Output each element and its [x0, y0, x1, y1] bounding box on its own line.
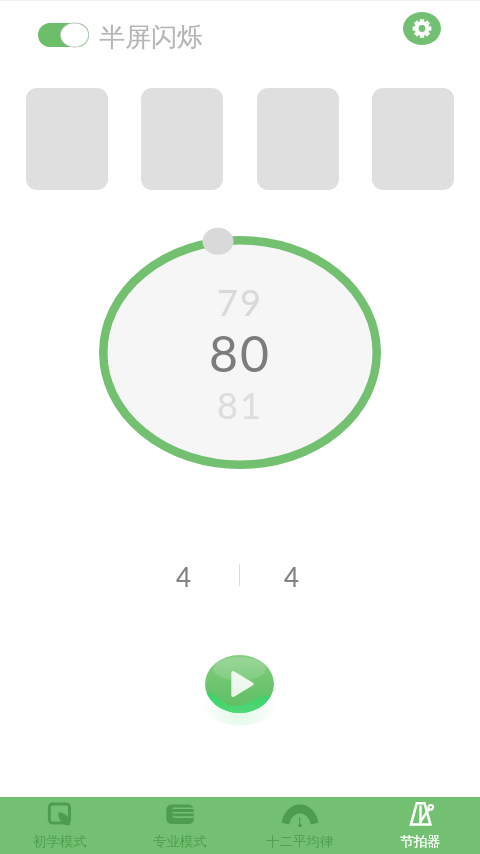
button[interactable] — [372, 88, 454, 190]
button[interactable] — [26, 88, 108, 190]
button[interactable]: 十二平均律 — [240, 797, 360, 854]
button[interactable] — [257, 88, 339, 190]
button[interactable]: 初学模式 — [0, 797, 120, 854]
button[interactable]: Settings — [403, 12, 441, 45]
staticText: 半屏闪烁 — [99, 21, 203, 54]
button[interactable] — [141, 88, 223, 190]
staticText: 初学模式 — [33, 833, 87, 850]
staticText: 十二平均律 — [266, 833, 334, 850]
button[interactable] — [38, 23, 89, 47]
staticText: 79 — [0, 280, 480, 323]
button[interactable]: Play — [205, 655, 274, 713]
staticText: 4 — [284, 561, 300, 592]
staticText: 81 — [0, 383, 480, 426]
staticText: 节拍器 — [400, 833, 441, 850]
staticText: 专业模式 — [153, 833, 207, 850]
staticText: 4 — [176, 561, 192, 592]
button[interactable]: 专业模式 — [120, 797, 240, 854]
button[interactable]: 4 — [160, 558, 208, 594]
button[interactable]: 节拍器 — [360, 797, 480, 854]
staticText: 80 — [0, 323, 480, 383]
button[interactable]: 4 — [268, 558, 316, 594]
